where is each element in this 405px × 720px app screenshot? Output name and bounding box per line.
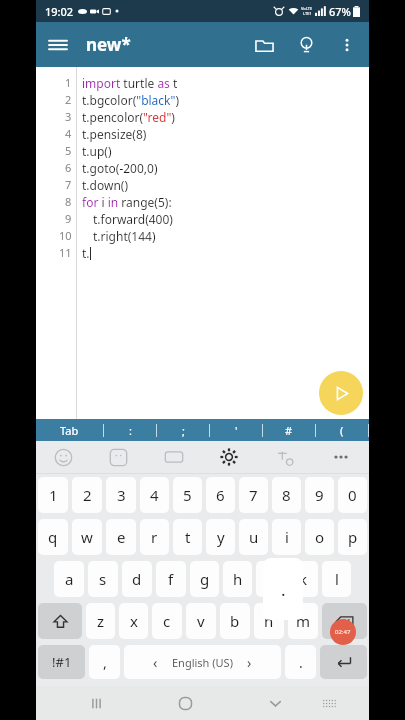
button[interactable]: e [106,519,136,555]
button[interactable]: 4 [140,477,169,513]
button[interactable]: t [173,519,202,555]
staticText: p [348,527,358,547]
staticText: Tab [60,423,79,438]
button[interactable]: Hints [285,24,327,66]
staticText: t.goto(-200,0) [82,160,158,176]
staticText: 1 [49,485,58,505]
button[interactable]: Keyboard settings [201,441,257,473]
button[interactable]: Recent apps [78,686,114,720]
button[interactable]: h [223,561,252,597]
button[interactable]: Translate [257,441,313,473]
button[interactable]: Tab [36,419,103,441]
button[interactable]: 1 [38,477,68,513]
button[interactable]: z [86,603,115,639]
button[interactable]: More options [313,441,369,473]
button[interactable]: i [272,519,301,555]
staticText: ‹ [153,653,158,672]
button[interactable]: o [305,519,334,555]
button[interactable]: Change keyboard [311,686,347,720]
button[interactable]: l [322,561,351,597]
button[interactable]: j [256,561,285,597]
button[interactable]: Open file [243,24,285,66]
button[interactable]: y [206,519,235,555]
staticText: y [217,527,225,547]
button[interactable]: g [190,561,219,597]
staticText: 11 [59,245,72,260]
button[interactable]: v [186,603,216,639]
button[interactable]: m [288,603,318,639]
button[interactable]: u [239,519,268,555]
button[interactable]: 3 [106,477,136,513]
button[interactable]: 9 [305,477,334,513]
button[interactable]: 6 [206,477,235,513]
button[interactable]: f [156,561,186,597]
button[interactable]: 7 [239,477,268,513]
button[interactable]: w [72,519,102,555]
staticText: LTE1 [303,11,312,16]
button[interactable]: r [140,519,169,555]
button[interactable]: b [220,603,250,639]
staticText: . [299,653,303,672]
button[interactable]: q [38,519,68,555]
button[interactable]: Home [167,686,203,720]
button[interactable]: x [119,603,148,639]
button[interactable]: Enter [320,645,367,679]
staticText: , [103,653,107,672]
staticText: s [99,569,107,589]
button[interactable]: 8 [272,477,301,513]
button[interactable]: ; [157,419,209,441]
staticText: 10 [59,228,72,243]
staticText: b [230,611,240,631]
staticText: k [299,569,308,589]
staticText: 19:02 [45,4,74,19]
button[interactable]: a [54,561,84,597]
staticText: g [200,569,210,589]
staticText: t [185,527,191,547]
button[interactable]: p [338,519,367,555]
staticText: n [264,611,274,631]
button[interactable]: ' [210,419,262,441]
button[interactable]: 5 [173,477,202,513]
button[interactable]: Space, English (US) [124,645,281,679]
staticText: v [197,611,205,631]
button[interactable]: ( [316,419,368,441]
button[interactable]: Shift [38,603,82,639]
button[interactable]: . [285,645,316,679]
button[interactable]: Run code [319,371,363,415]
staticText: 5 [65,143,72,158]
staticText: import turtle as t [82,75,178,91]
button[interactable]: n [254,603,284,639]
button[interactable]: More options [327,25,367,65]
staticText: 0 [348,485,357,505]
staticText: 9 [65,211,72,226]
staticText: i [285,527,289,547]
staticText: 2 [65,92,72,107]
button[interactable]: Stickers [91,441,146,473]
staticText: VoLTE [301,6,313,11]
button[interactable]: Navigation menu [36,23,80,67]
button[interactable]: k [289,561,318,597]
staticText: 7 [65,177,72,192]
button[interactable]: : [104,419,156,441]
staticText: 8 [65,194,72,209]
button[interactable]: , [89,645,120,679]
button[interactable]: s [88,561,118,597]
button[interactable]: 0 [338,477,367,513]
button[interactable]: Emoji [36,441,91,473]
button[interactable]: Hide keyboard [257,686,293,720]
staticText: › [247,653,252,672]
button[interactable]: c [152,603,182,639]
staticText: t.bgcolor("black") [82,92,180,108]
staticText: e [117,527,126,547]
button[interactable]: d [122,561,152,597]
button[interactable]: !#1 [38,645,85,679]
button[interactable]: 2 [72,477,102,513]
staticText: m [296,611,311,631]
button[interactable]: GIF [146,441,201,473]
staticText: t.pencolor("red") [82,109,175,125]
button[interactable]: Backspace [322,603,367,639]
button[interactable]: # [263,419,315,441]
staticText: w [81,527,93,547]
staticText: u [249,527,259,547]
